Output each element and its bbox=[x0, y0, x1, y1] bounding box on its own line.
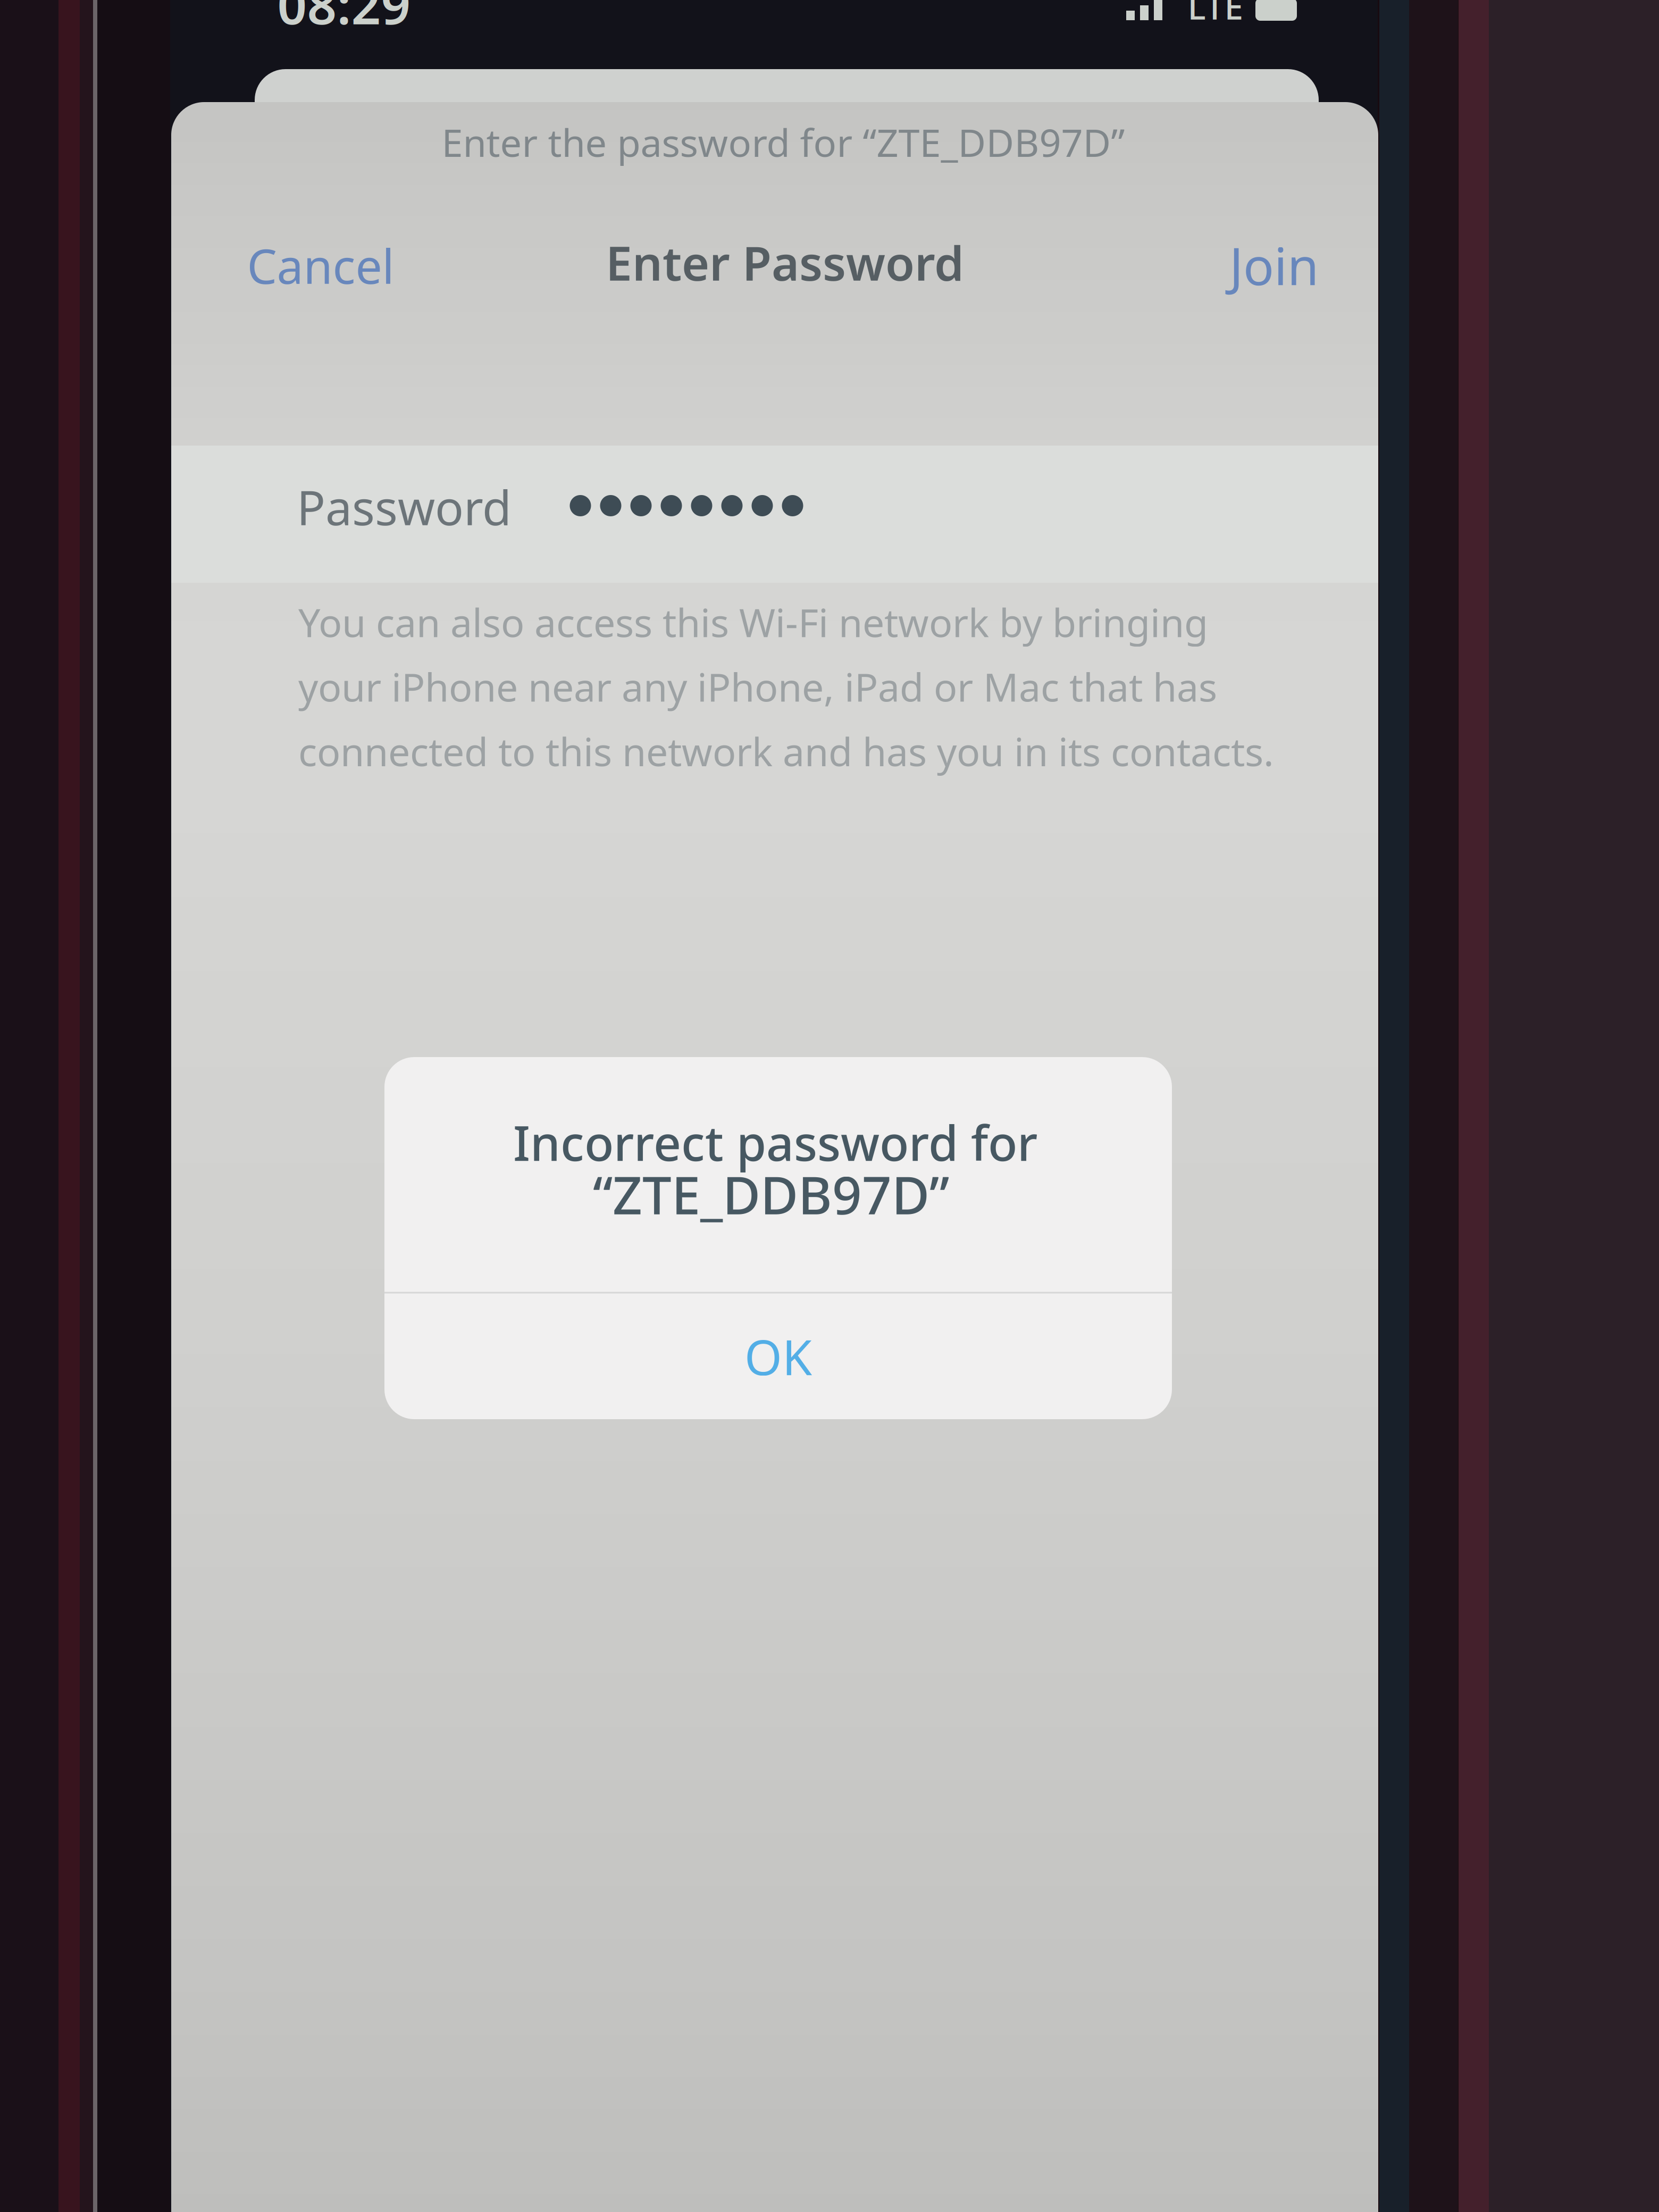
button[interactable]: Password bbox=[171, 446, 1378, 583]
staticText: Cancel bbox=[247, 234, 394, 297]
staticText: Incorrect password for bbox=[513, 1110, 1037, 1174]
staticText: Join bbox=[1229, 231, 1319, 299]
staticText: Password bbox=[297, 475, 512, 538]
button[interactable]: OK bbox=[384, 1293, 1172, 1420]
staticText: You can also access this Wi-Fi network b… bbox=[298, 596, 1208, 648]
staticText: connected to this network and has you in… bbox=[298, 725, 1274, 777]
staticText: Enter Password bbox=[606, 231, 964, 294]
staticText: LTE bbox=[1188, 0, 1243, 29]
staticText: “ZTE_DDB97D” bbox=[593, 1160, 949, 1229]
staticText: Enter the password for “ZTE_DDB97D” bbox=[442, 117, 1125, 167]
staticText: your iPhone near any iPhone, iPad or Mac… bbox=[298, 661, 1217, 712]
button[interactable]: Join bbox=[1205, 225, 1343, 305]
staticText: OK bbox=[744, 1324, 812, 1388]
button[interactable]: Cancel bbox=[233, 225, 408, 305]
staticText: 08:29 bbox=[277, 0, 411, 39]
